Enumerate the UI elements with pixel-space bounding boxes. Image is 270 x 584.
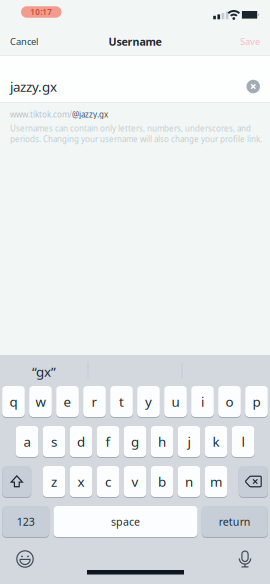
staticText: i [201, 393, 204, 410]
staticText: j [187, 433, 190, 450]
button[interactable]: z [43, 465, 65, 497]
staticText: d [77, 433, 85, 450]
button[interactable]: m [205, 465, 227, 497]
button[interactable]: h [151, 425, 173, 457]
staticText: p [252, 393, 260, 410]
staticText: w [35, 393, 45, 410]
staticText: z [51, 473, 57, 490]
staticText: r [91, 393, 97, 410]
staticText: Save [240, 35, 260, 48]
staticText: u [171, 393, 179, 410]
button[interactable]: b [151, 465, 173, 497]
staticText: Usernames can contain only letters, numb… [10, 123, 251, 134]
staticText: 10:17 [30, 7, 52, 17]
staticText: v [131, 473, 138, 490]
staticText: “gx” [32, 363, 56, 380]
staticText: m [210, 473, 222, 490]
staticText: Username [108, 34, 161, 49]
staticText: q [9, 393, 17, 410]
button[interactable]: l [232, 425, 254, 457]
staticText: 123 [17, 514, 35, 529]
staticText: k [212, 433, 219, 450]
staticText: return [219, 514, 251, 529]
button[interactable]: d [70, 425, 92, 457]
button[interactable]: s [43, 425, 65, 457]
button[interactable]: j [178, 425, 200, 457]
staticText: y [145, 393, 152, 410]
button[interactable]: c [97, 465, 119, 497]
staticText: space [111, 514, 140, 529]
staticText: a [23, 433, 30, 450]
button[interactable]: 123 [2, 505, 49, 537]
button[interactable]: o [218, 385, 241, 417]
button[interactable]: f [97, 425, 119, 457]
staticText: n [185, 473, 193, 490]
button[interactable]: space [53, 505, 197, 537]
button[interactable]: e [56, 385, 79, 417]
button[interactable]: y [137, 385, 160, 417]
staticText: @jazzy.gx [72, 109, 108, 120]
staticText: f [105, 433, 110, 450]
button[interactable]: q [2, 385, 25, 417]
button[interactable]: k [205, 425, 227, 457]
button[interactable]: u [164, 385, 187, 417]
button[interactable]: g [124, 425, 146, 457]
staticText: periods. Changing your username will als… [10, 134, 262, 144]
button[interactable]: “gx” [0, 354, 88, 385]
button[interactable]: Save [240, 35, 270, 48]
staticText: www.tiktok.com/ [10, 109, 72, 120]
button[interactable]: Emoji [10, 545, 40, 573]
button[interactable]: i [191, 385, 214, 417]
staticText: b [158, 473, 166, 490]
staticText: Cancel [10, 35, 38, 48]
button[interactable]: w [29, 385, 52, 417]
button[interactable]: p [245, 385, 268, 417]
staticText: s [51, 433, 57, 450]
staticText: x [77, 473, 84, 490]
staticText: o [225, 393, 233, 410]
button[interactable]: Recording indicator, 10:17 [0, 6, 61, 18]
button[interactable]: Delete [239, 465, 268, 497]
staticText: c [105, 473, 111, 490]
button[interactable]: Shift [2, 465, 31, 497]
button[interactable]: return [202, 505, 268, 537]
staticText: l [241, 433, 244, 450]
button[interactable]: Clear text [246, 80, 270, 93]
button[interactable]: x [70, 465, 92, 497]
button[interactable]: Cancel [0, 35, 38, 48]
button[interactable]: t [110, 385, 133, 417]
staticText: h [158, 433, 166, 450]
staticText: g [131, 433, 139, 450]
button[interactable]: v [124, 465, 146, 497]
staticText: e [63, 393, 71, 410]
button[interactable]: Dictation [230, 545, 260, 573]
button[interactable]: a [16, 425, 38, 457]
staticText: jazzy.gx [10, 78, 57, 95]
button[interactable]: n [178, 465, 200, 497]
staticText: t [119, 393, 124, 410]
button[interactable]: r [83, 385, 106, 417]
